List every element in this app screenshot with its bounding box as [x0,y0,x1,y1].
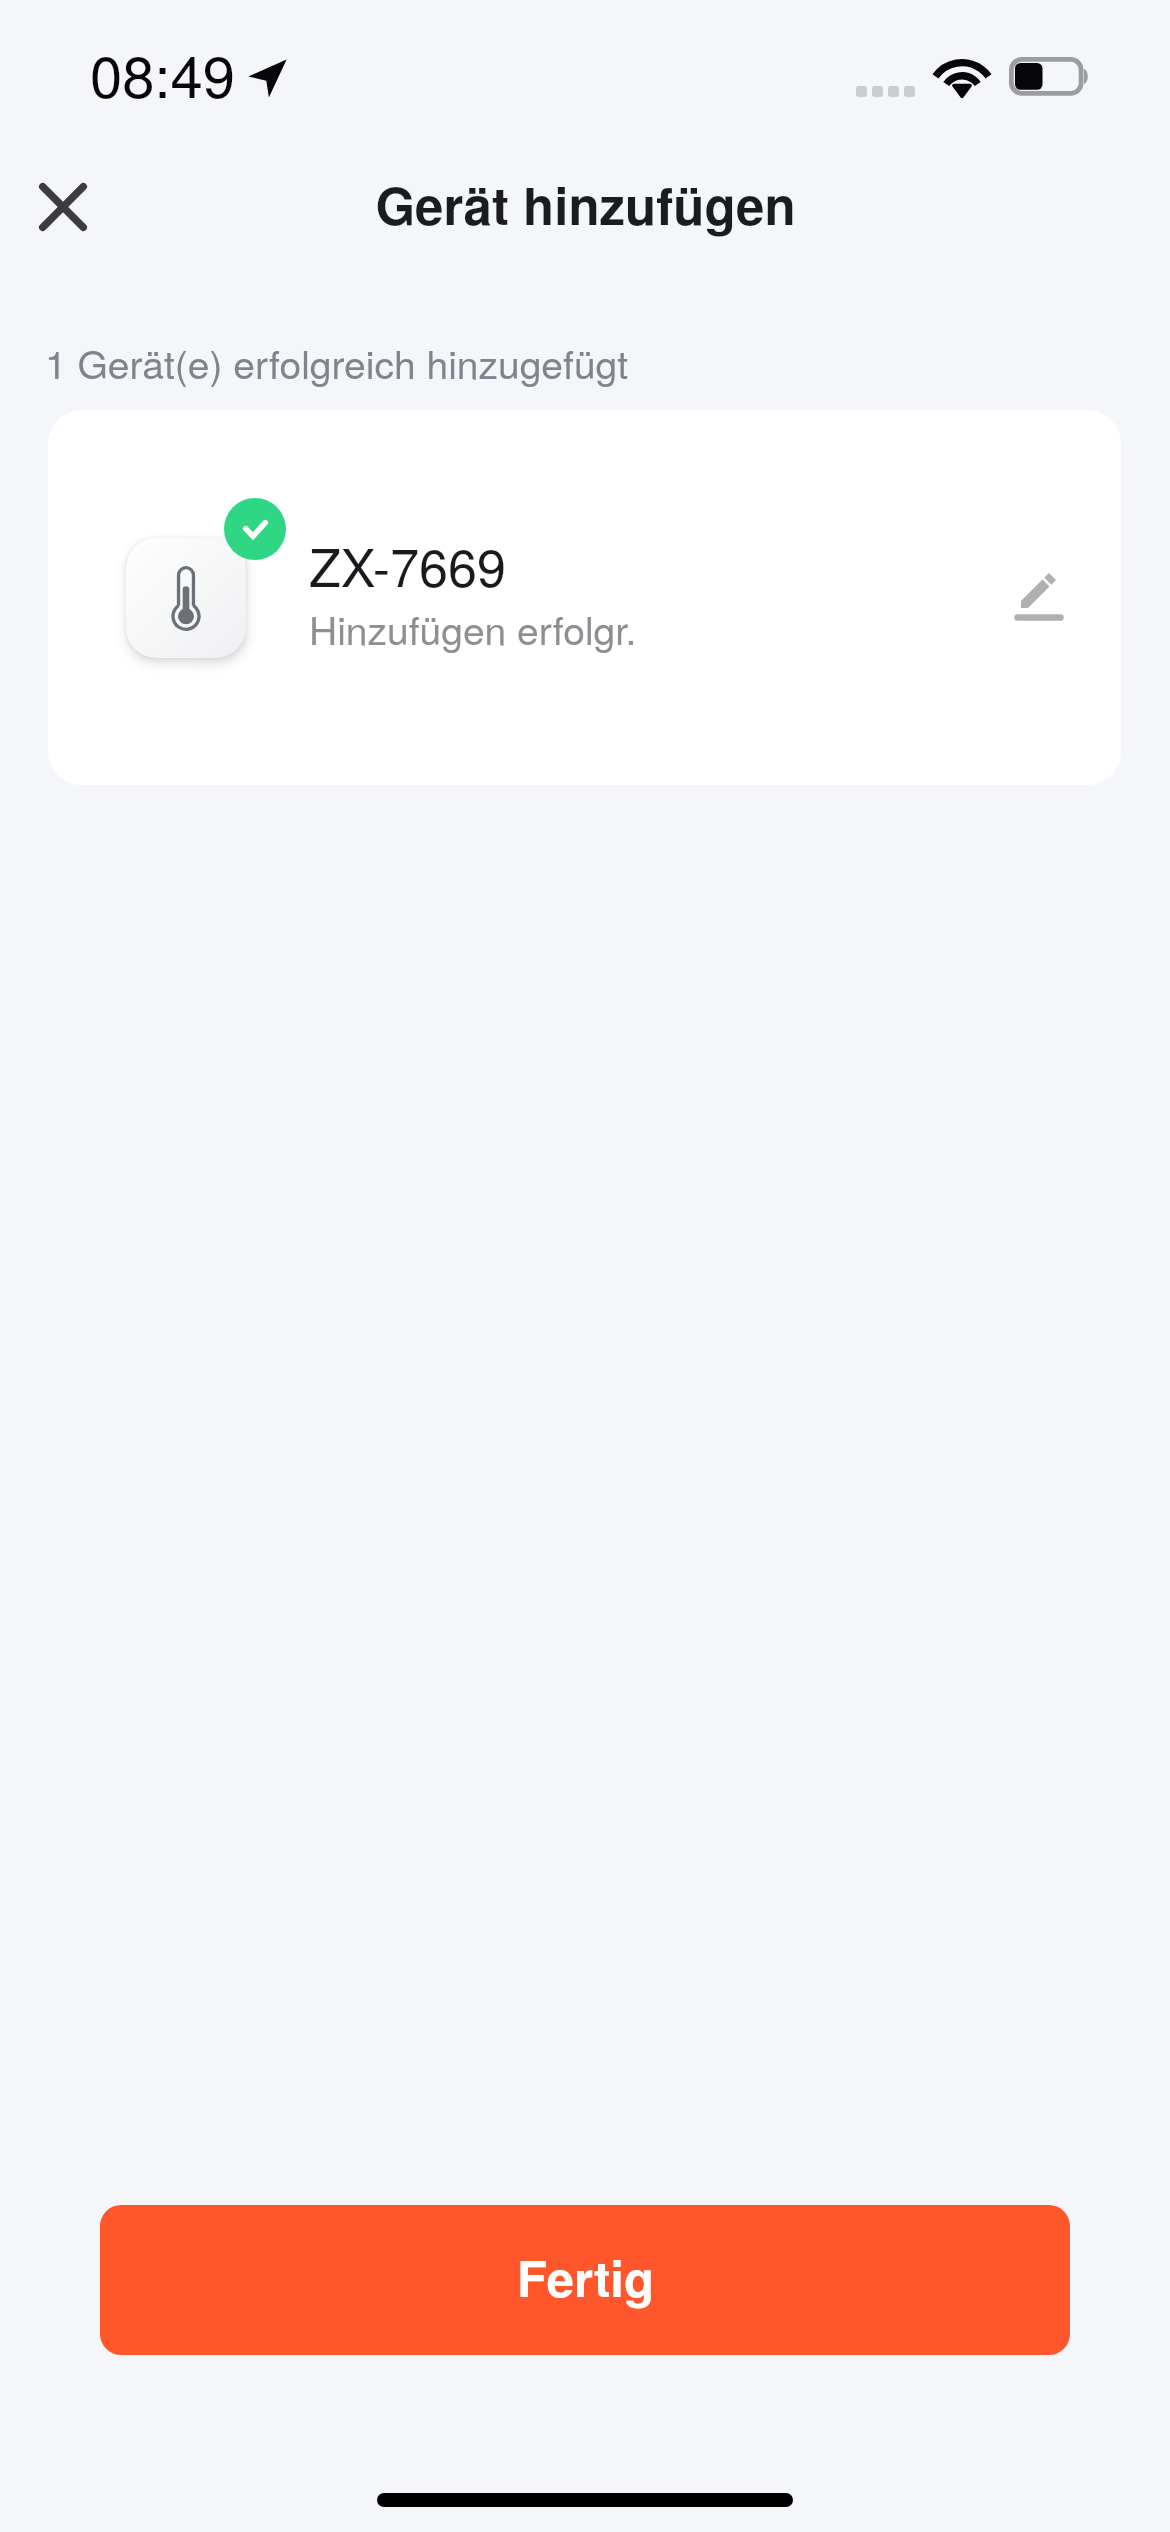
staticText: 08:49 [90,31,236,114]
button[interactable]: ZX-7669 [48,410,1121,785]
staticText: Gerät hinzufügen [375,168,796,241]
button[interactable]: Fertig [100,2205,1070,2355]
staticText: Hinzufügen erfolgr. [309,600,637,656]
button[interactable]: Schließen [18,162,108,252]
staticText: 1 Gerät(e) erfolgreich hinzugefügt [45,334,629,390]
staticText: Fertig [517,2242,654,2312]
button[interactable]: Umbenennen [991,550,1085,644]
staticText: ZX-7669 [309,527,506,601]
